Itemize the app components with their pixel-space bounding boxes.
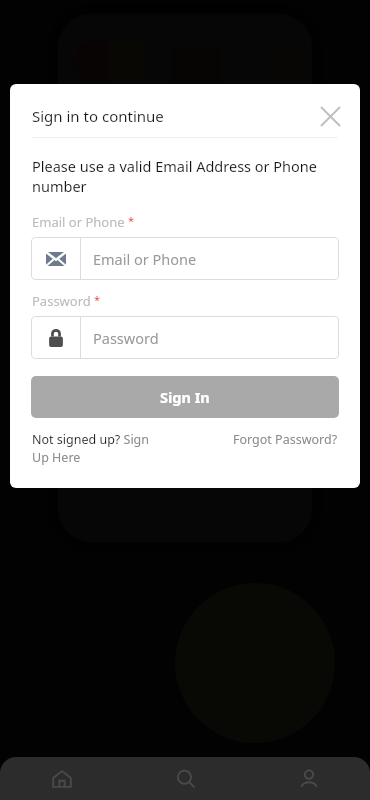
button[interactable]: Sign In — [31, 376, 339, 418]
staticText: Password — [93, 328, 159, 348]
button[interactable]: Forgot Password? — [233, 431, 338, 448]
staticText: Sign in to continue — [32, 106, 164, 126]
button[interactable]: Profile — [247, 757, 370, 800]
staticText: Sign In — [160, 387, 210, 407]
staticText: Email or Phone — [32, 213, 125, 231]
staticText: Forgot Password? — [233, 431, 338, 448]
button[interactable]: Search — [124, 757, 247, 800]
button[interactable]: Home — [0, 757, 124, 800]
button[interactable]: Email or Phone — [31, 237, 339, 280]
staticText: * — [94, 292, 101, 307]
button[interactable]: Password — [31, 316, 339, 359]
staticText: Not signed up? Sign Up Here — [32, 431, 160, 466]
staticText: * — [128, 213, 135, 228]
button[interactable]: Not signed up? Sign Up Here — [32, 431, 160, 466]
staticText: Email or Phone — [93, 249, 197, 269]
staticText: Please use a valid Email Address or Phon… — [32, 156, 338, 197]
button[interactable]: Close — [314, 100, 346, 132]
staticText: Password — [32, 292, 91, 310]
